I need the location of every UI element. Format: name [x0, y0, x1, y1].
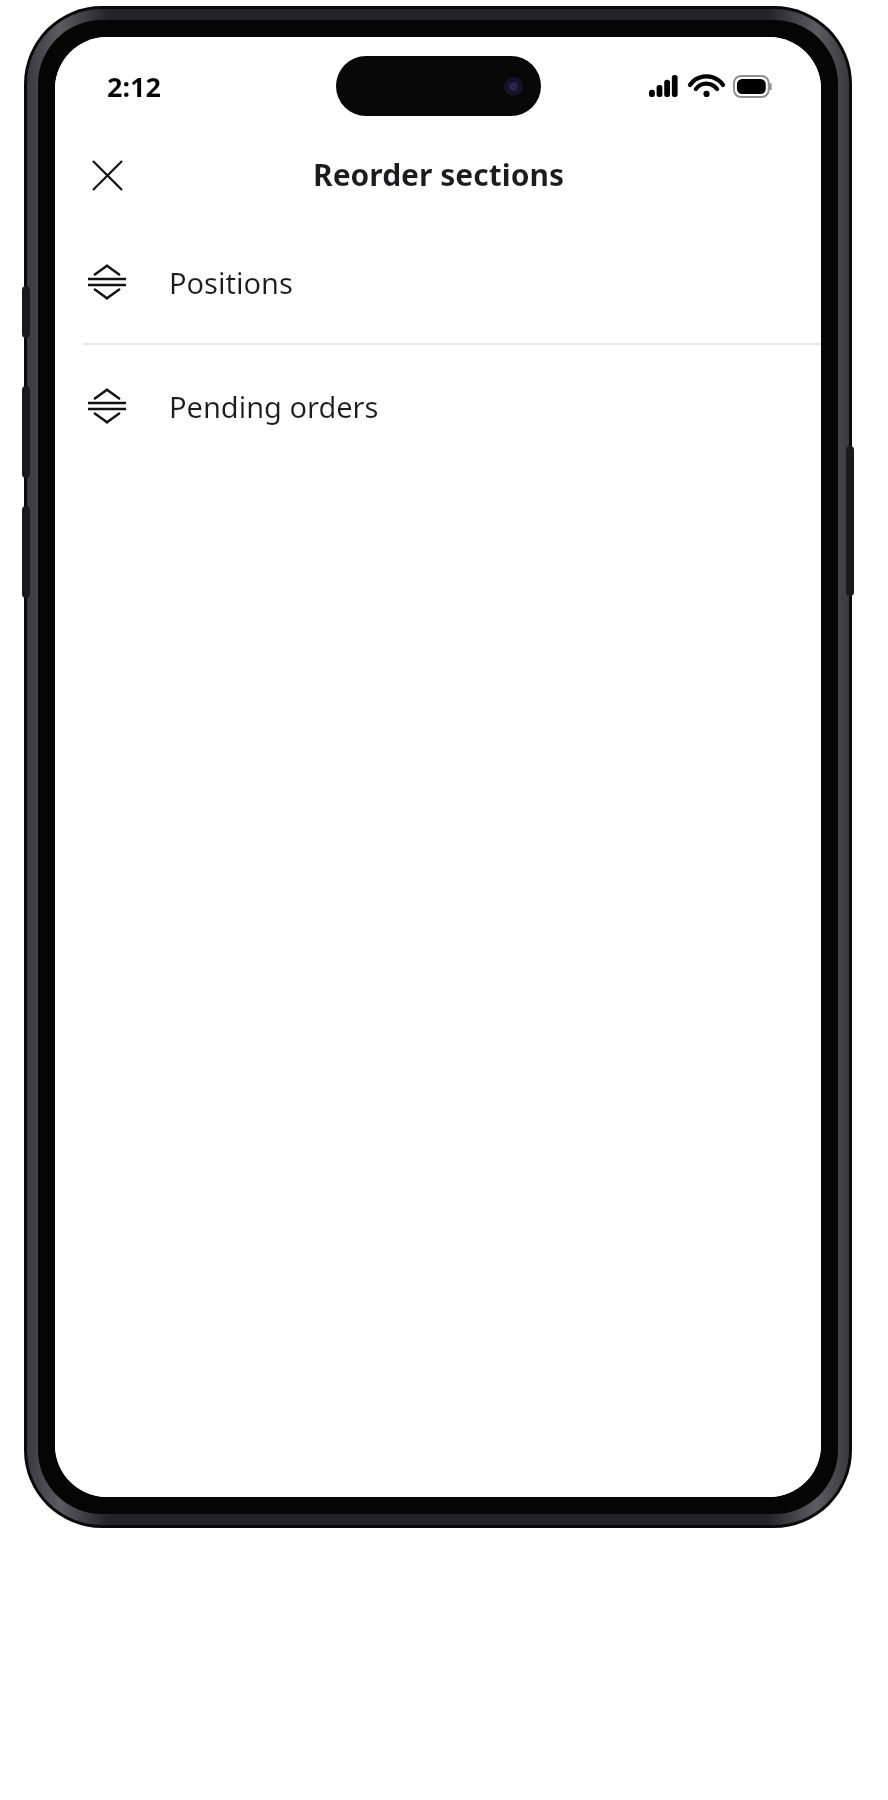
- other: Reorder Pending orders: [77, 376, 137, 436]
- button[interactable]: Close: [77, 145, 137, 205]
- other: Reorder Positions: [77, 252, 137, 312]
- staticText: Pending orders: [169, 387, 379, 426]
- staticText: Reorder sections: [313, 154, 564, 195]
- button[interactable]: Reorder Pending orders: [55, 345, 821, 467]
- staticText: Positions: [169, 263, 293, 302]
- button[interactable]: Reorder Positions: [55, 221, 821, 343]
- staticText: 2:12: [107, 68, 161, 105]
